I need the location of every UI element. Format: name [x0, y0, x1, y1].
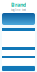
- staticText: Brand: [11, 1, 26, 8]
- staticText: tagline text: [11, 8, 26, 12]
